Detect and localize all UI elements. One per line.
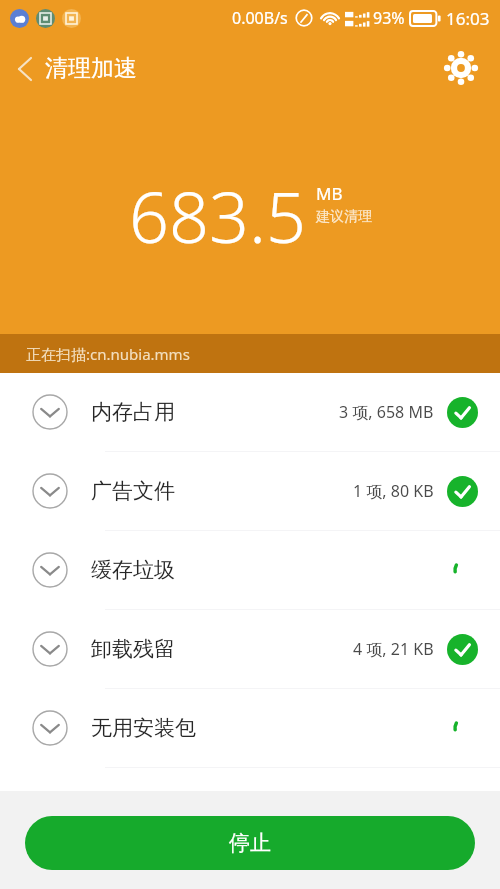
- staticText: 3 项, 658 MB: [339, 401, 434, 423]
- staticText: 正在扫描:cn.nubia.mms: [26, 344, 190, 364]
- button[interactable]: Settings: [438, 45, 484, 91]
- staticText: MB: [316, 182, 343, 205]
- button[interactable]: 缓存垃圾: [0, 531, 500, 609]
- staticText: 卸载残留: [91, 636, 175, 662]
- staticText: 无用安装包: [91, 715, 196, 741]
- staticText: 16:03: [446, 7, 490, 30]
- button[interactable]: 卸载残留: [0, 610, 500, 688]
- staticText: 建议清理: [316, 208, 372, 226]
- staticText: 683.5: [129, 168, 306, 263]
- staticText: 清理加速: [45, 54, 137, 83]
- staticText: 0.00B/s: [232, 7, 288, 29]
- button[interactable]: 停止: [25, 816, 475, 870]
- staticText: 4 项, 21 KB: [353, 638, 434, 660]
- staticText: 93%: [373, 7, 405, 29]
- button[interactable]: 广告文件: [0, 452, 500, 530]
- button[interactable]: Back: [6, 46, 149, 91]
- staticText: 停止: [229, 830, 271, 856]
- staticText: 内存占用: [91, 399, 175, 425]
- staticText: 1 项, 80 KB: [353, 480, 434, 502]
- button[interactable]: 内存占用: [0, 373, 500, 451]
- staticText: 广告文件: [91, 478, 175, 504]
- staticText: 缓存垃圾: [91, 557, 175, 583]
- button[interactable]: 无用安装包: [0, 689, 500, 767]
